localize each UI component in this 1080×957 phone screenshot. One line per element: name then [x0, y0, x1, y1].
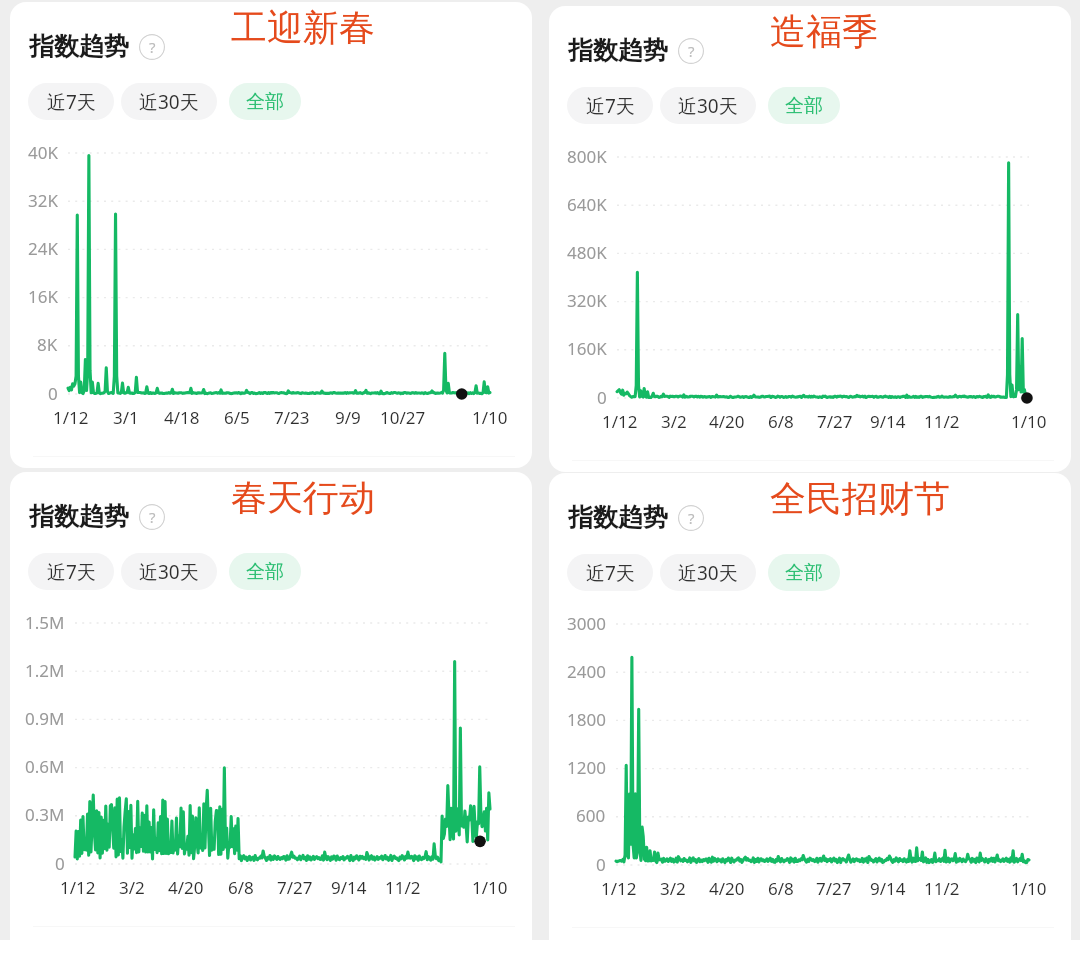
button[interactable]: 近7天	[567, 554, 653, 591]
staticText: 6/5	[224, 406, 250, 429]
staticText: 6/8	[768, 877, 794, 900]
button[interactable]: 全部	[229, 553, 301, 590]
staticText: 800K	[567, 145, 607, 168]
staticText: 11/2	[924, 877, 960, 900]
button[interactable]: Help	[139, 504, 165, 530]
staticText: 0	[48, 382, 58, 405]
staticText: 3/2	[661, 410, 687, 433]
staticText: 9/14	[331, 876, 367, 899]
staticText: 指数趋势	[568, 35, 668, 66]
staticText: 全部	[785, 561, 823, 585]
staticText: 1/12	[60, 876, 96, 899]
staticText: 7/27	[817, 410, 853, 433]
staticText: ?	[149, 507, 156, 527]
staticText: 1/12	[53, 406, 89, 429]
staticText: 4/20	[709, 877, 745, 900]
staticText: 640K	[567, 193, 607, 216]
staticText: 0	[55, 852, 65, 875]
button[interactable]: 近7天	[28, 83, 114, 120]
staticText: 32K	[28, 189, 58, 212]
staticText: 指数趋势	[29, 501, 129, 532]
staticText: 全部	[246, 560, 284, 584]
staticText: 11/2	[385, 876, 421, 899]
staticText: ?	[688, 508, 695, 528]
staticText: 春天行动	[231, 475, 375, 520]
staticText: ?	[149, 37, 156, 57]
staticText: 480K	[567, 241, 607, 264]
staticText: 10/27	[380, 406, 426, 429]
staticText: 指数趋势	[568, 502, 668, 533]
staticText: 1.2M	[25, 659, 65, 682]
staticText: 4/20	[168, 876, 204, 899]
staticText: 近7天	[586, 93, 635, 119]
staticText: 7/23	[274, 406, 310, 429]
staticText: 全民招财节	[770, 476, 950, 521]
staticText: 近7天	[586, 560, 635, 586]
button[interactable]: 全部	[768, 554, 840, 591]
staticText: 1/10	[1011, 877, 1047, 900]
staticText: 3/1	[113, 406, 139, 429]
button[interactable]: Help	[678, 505, 704, 531]
staticText: 近7天	[47, 89, 96, 115]
button[interactable]: 指数趋势 春天行动	[10, 472, 532, 940]
button[interactable]: 全部	[768, 87, 840, 124]
button[interactable]: Help	[139, 34, 165, 60]
button[interactable]: 近30天	[660, 554, 756, 591]
staticText: ?	[688, 41, 695, 61]
staticText: 40K	[28, 141, 58, 164]
staticText: 近30天	[139, 559, 199, 585]
button[interactable]: 指数趋势 工迎新春	[10, 2, 532, 468]
staticText: 全部	[246, 90, 284, 114]
staticText: 造福季	[770, 9, 878, 54]
button[interactable]: 指数趋势 造福季	[549, 6, 1071, 472]
button[interactable]: 近7天	[567, 87, 653, 124]
staticText: 600	[576, 804, 606, 827]
button[interactable]: Help	[678, 38, 704, 64]
staticText: 工迎新春	[231, 5, 375, 50]
staticText: 近7天	[47, 559, 96, 585]
staticText: 7/27	[277, 876, 313, 899]
staticText: 近30天	[678, 93, 738, 119]
staticText: 3000	[567, 612, 606, 635]
staticText: 7/27	[816, 877, 852, 900]
staticText: 近30天	[678, 560, 738, 586]
staticText: 9/14	[870, 410, 906, 433]
staticText: 0.9M	[25, 707, 65, 730]
button[interactable]: 指数趋势 全民招财节	[549, 473, 1071, 940]
staticText: 320K	[567, 289, 607, 312]
button[interactable]: 近30天	[121, 83, 217, 120]
staticText: 1.5M	[25, 611, 65, 634]
staticText: 24K	[28, 237, 58, 260]
staticText: 1/10	[1011, 410, 1047, 433]
staticText: 4/20	[709, 410, 745, 433]
staticText: 1/10	[472, 406, 508, 429]
staticText: 3/2	[660, 877, 686, 900]
staticText: 3/2	[119, 876, 145, 899]
staticText: 0	[596, 853, 606, 876]
staticText: 0	[597, 386, 607, 409]
staticText: 指数趋势	[29, 31, 129, 62]
staticText: 16K	[28, 285, 58, 308]
staticText: 4/18	[164, 406, 200, 429]
staticText: 6/8	[228, 876, 254, 899]
staticText: 全部	[785, 94, 823, 118]
staticText: 11/2	[924, 410, 960, 433]
staticText: 1/12	[602, 410, 638, 433]
staticText: 9/14	[870, 877, 906, 900]
staticText: 近30天	[139, 89, 199, 115]
staticText: 160K	[567, 337, 607, 360]
staticText: 1200	[567, 756, 606, 779]
staticText: 6/8	[768, 410, 794, 433]
button[interactable]: 近30天	[121, 553, 217, 590]
staticText: 9/9	[335, 406, 361, 429]
button[interactable]: 全部	[229, 83, 301, 120]
staticText: 0.6M	[25, 755, 65, 778]
staticText: 1/12	[601, 877, 637, 900]
staticText: 2400	[567, 660, 606, 683]
button[interactable]: 近30天	[660, 87, 756, 124]
staticText: 0.3M	[25, 803, 65, 826]
staticText: 1800	[567, 708, 606, 731]
staticText: 8K	[37, 333, 58, 356]
button[interactable]: 近7天	[28, 553, 114, 590]
staticText: 1/10	[472, 876, 508, 899]
